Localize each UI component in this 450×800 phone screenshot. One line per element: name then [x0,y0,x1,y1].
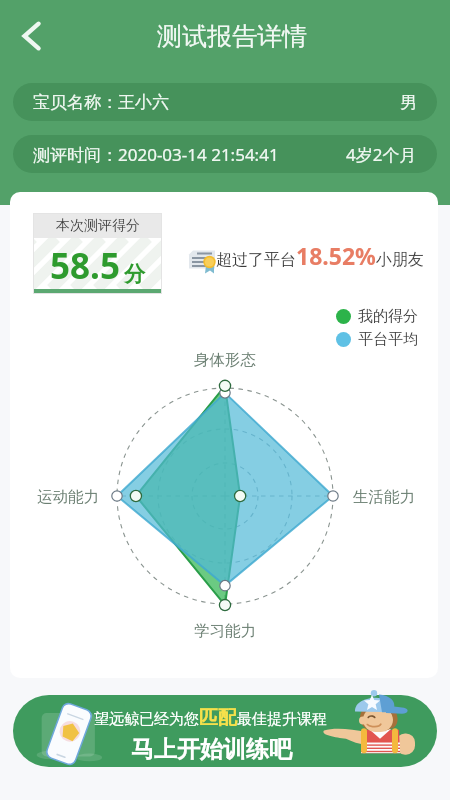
staticText: 望远鲸已经为您匹配最佳提升课程 [94,706,327,730]
button[interactable]: Back [10,14,54,58]
staticText: 宝贝名称：王小六 [33,92,169,113]
staticText: 测试报告详情 [157,21,307,52]
staticText: 58.5 [50,242,120,289]
staticText: 测评时间：2020-03-14 21:54:41 [33,143,279,166]
staticText: 4岁2个月 [346,143,417,166]
button[interactable] [13,695,437,767]
staticText: 我的得分 [358,307,418,326]
staticText: 超过了平台18.52%小朋友 [216,240,424,271]
staticText: 学习能力 [194,621,256,641]
button[interactable]: 我的得分 [336,307,418,326]
button[interactable]: 宝贝名称：王小六 [13,83,437,121]
staticText: 男 [400,92,417,113]
staticText: 分 [124,261,145,287]
staticText: 生活能力 [353,487,415,507]
staticText: 身体形态 [194,350,256,370]
staticText: 平台平均 [358,330,418,349]
staticText: 马上开始训练吧 [131,735,292,764]
staticText: 本次测评得分 [56,217,140,235]
button[interactable]: 平台平均 [336,330,418,349]
staticText: 运动能力 [37,487,99,507]
button[interactable]: 测评时间：2020-03-14 21:54:41 [13,135,437,173]
